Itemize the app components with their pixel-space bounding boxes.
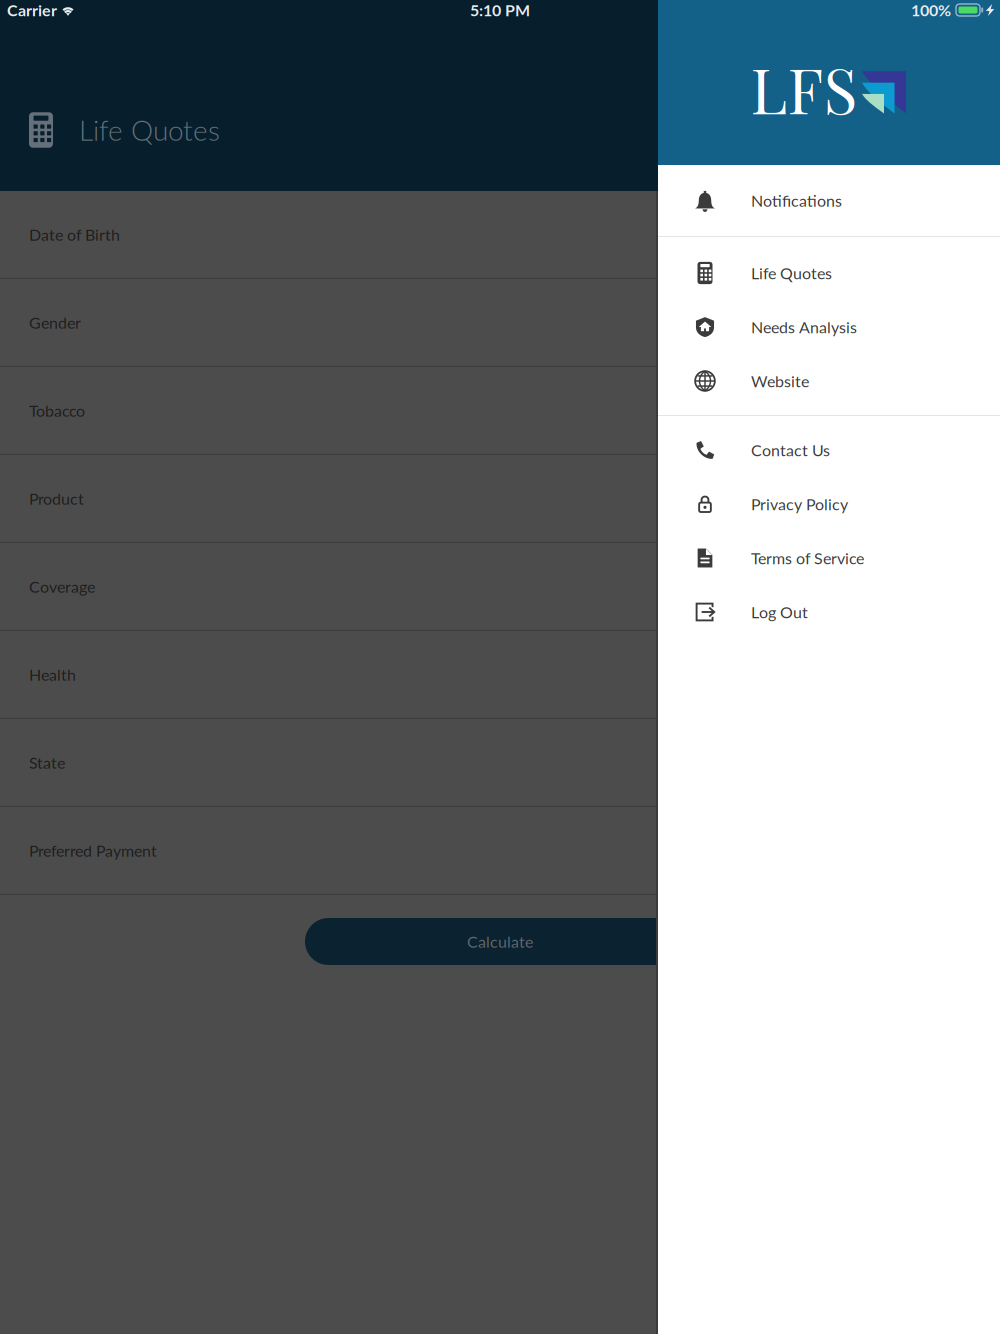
staticText: Date of Birth	[29, 225, 120, 244]
staticText: Life Quotes	[751, 263, 832, 283]
button[interactable]: Privacy Policy	[658, 477, 1000, 531]
staticText: 100%	[911, 0, 951, 20]
button[interactable]: Terms of Service	[658, 531, 1000, 585]
button[interactable]: Needs Analysis	[658, 300, 1000, 354]
staticText: Contact Us	[751, 440, 830, 460]
button[interactable]: Product	[0, 455, 1000, 543]
staticText: Gender	[29, 313, 81, 332]
staticText: Carrier	[7, 0, 57, 20]
button[interactable]: Gender	[0, 279, 1000, 367]
button[interactable]: Log Out	[658, 585, 1000, 639]
staticText: Life Quotes	[79, 113, 220, 147]
staticText: State	[29, 753, 65, 772]
button[interactable]: Life Quotes	[658, 246, 1000, 300]
staticText: Website	[751, 371, 809, 391]
staticText: Notifications	[751, 191, 842, 210]
staticText: Needs Analysis	[751, 317, 857, 337]
button[interactable]: Health	[0, 631, 1000, 719]
staticText: LFS	[750, 46, 857, 130]
button[interactable]: Website	[658, 354, 1000, 408]
staticText: Preferred Payment	[29, 841, 157, 860]
button[interactable]: Notifications	[658, 165, 1000, 236]
staticText: Terms of Service	[751, 548, 864, 568]
button[interactable]: Coverage	[0, 543, 1000, 631]
staticText: Health	[29, 665, 76, 684]
button[interactable]: Contact Us	[658, 423, 1000, 477]
staticText: Privacy Policy	[751, 494, 848, 514]
staticText: Tobacco	[29, 401, 85, 420]
staticText: Product	[29, 489, 84, 508]
button[interactable]: Preferred Payment	[0, 807, 1000, 895]
staticText: Coverage	[29, 577, 95, 596]
button[interactable]: Date of Birth	[0, 191, 1000, 279]
staticText: Calculate	[467, 932, 533, 951]
staticText: 5:10 PM	[470, 0, 530, 20]
staticText: Log Out	[751, 602, 808, 622]
button[interactable]: Calculate	[305, 918, 695, 965]
button[interactable]: Tobacco	[0, 367, 1000, 455]
button[interactable]: State	[0, 719, 1000, 807]
